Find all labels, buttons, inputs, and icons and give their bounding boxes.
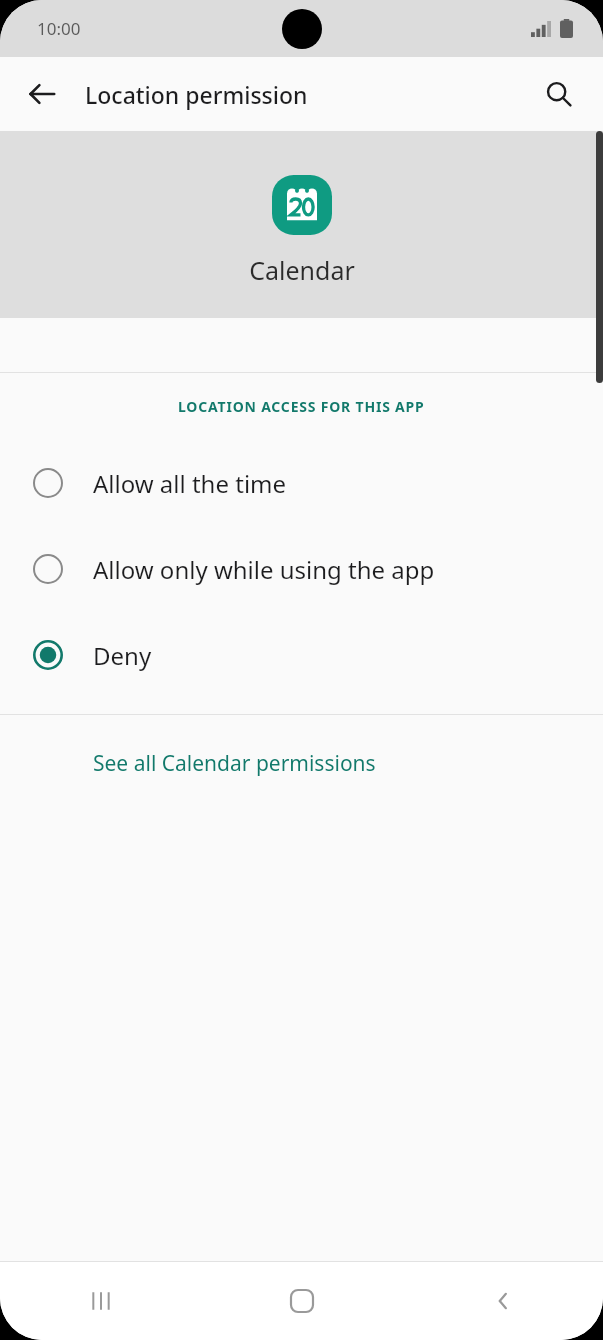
button[interactable]: Deny [0,612,603,698]
staticText: See all Calendar permissions [93,749,376,778]
staticText: Allow all the time [93,467,287,500]
staticText: 10:00 [37,17,81,40]
button[interactable]: Back [402,1262,603,1340]
button[interactable]: Search [535,70,583,118]
staticText: LOCATION ACCESS FOR THIS APP [178,397,425,416]
staticText: Location permission [85,79,308,110]
button[interactable]: Home [201,1262,402,1340]
button[interactable]: Back [18,70,66,118]
button[interactable]: Recents [0,1262,201,1340]
button[interactable]: Allow all the time [0,440,603,526]
staticText: Calendar [249,253,355,287]
staticText: Deny [93,639,152,672]
button[interactable]: See all Calendar permissions [0,715,603,811]
button[interactable]: Allow only while using the app [0,526,603,612]
staticText: Allow only while using the app [93,553,435,586]
